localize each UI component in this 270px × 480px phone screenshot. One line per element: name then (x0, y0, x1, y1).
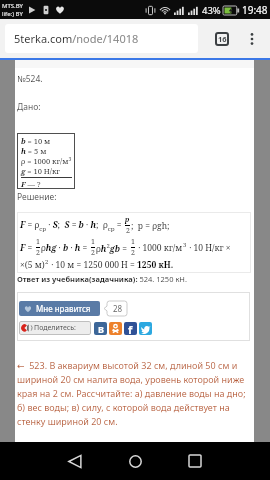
staticText: №524. (17, 73, 43, 85)
staticText: · 10 м = 1250 000 Н = 1250 кН. (49, 259, 174, 271)
button[interactable]: Recent apps (177, 449, 213, 473)
staticText: ; p = ρgh; (131, 220, 170, 232)
staticText: 1 (36, 237, 40, 247)
staticText: ← 523. В аквариум высотой 32 см, длиной … (17, 359, 246, 428)
staticText: B (98, 323, 104, 335)
staticText: 28 (113, 303, 123, 314)
button[interactable]: Share on VK (94, 322, 107, 335)
staticText: 1 (131, 237, 135, 247)
staticText: 2 (36, 248, 40, 258)
staticText: 2 (45, 258, 49, 266)
button[interactable]: Share on Twitter (139, 322, 152, 335)
staticText: Поделитесь: (34, 323, 76, 333)
staticText: p (125, 215, 130, 225)
staticText: Дано: (17, 101, 41, 113)
staticText: 19:48 (242, 3, 268, 17)
staticText: 3 (183, 241, 187, 249)
staticText: ×(5 м) (20, 259, 45, 271)
staticText: F = (20, 242, 35, 254)
staticText: Решение: (17, 191, 57, 203)
button[interactable]: Share on Facebook (124, 322, 137, 335)
staticText: ρhg · b · h = (41, 242, 90, 254)
staticText: 16 (218, 34, 227, 44)
staticText: 2 (91, 248, 95, 258)
staticText: g = 10 Н/кг (21, 166, 60, 176)
staticText: F — ? (21, 179, 41, 189)
button[interactable]: Поделитесь: (19, 321, 91, 335)
staticText: f (128, 322, 133, 335)
button[interactable]: More options (238, 25, 266, 53)
staticText: · 10 Н/кг × (187, 242, 231, 254)
staticText: Ответ из учебника(задачника): 524. 1250 … (17, 274, 187, 284)
button[interactable]: Back (57, 449, 93, 473)
staticText: ρh2gb = (96, 242, 130, 254)
staticText: life:) BY (2, 10, 23, 18)
button[interactable]: 28 (104, 301, 127, 316)
staticText: h = 5 м (21, 146, 47, 156)
button[interactable]: Home (117, 449, 153, 473)
staticText: 2 (126, 226, 130, 236)
staticText: 1 (91, 237, 95, 247)
staticText: F = ρср · S; S = b · h; ρср = (20, 219, 124, 233)
staticText: 43% (202, 4, 221, 17)
staticText: Мне нравится (36, 303, 91, 314)
button[interactable]: Share on Odnoklassniki (109, 322, 122, 335)
button[interactable]: 5terka.com/node/14018 (5, 24, 198, 53)
staticText: b = 10 м (21, 136, 51, 146)
button[interactable]: Мне нравится (19, 301, 100, 316)
staticText: 5terka.com/node/14018 (14, 31, 139, 46)
staticText: ρ = 1000 кг/м3 (21, 156, 72, 166)
button[interactable]: Tabs, 16 open (208, 25, 236, 53)
staticText: · 1000 кг/м (136, 242, 183, 254)
staticText: 2 (131, 248, 135, 258)
staticText: MTS.BY (2, 2, 23, 10)
button[interactable]: ← 523. В аквариум высотой 32 см, длиной … (17, 359, 250, 428)
